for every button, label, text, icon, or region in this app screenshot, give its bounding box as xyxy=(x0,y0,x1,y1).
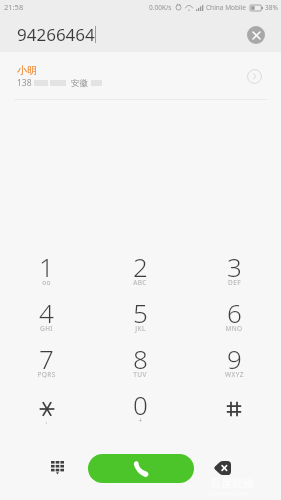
button[interactable]: 5 xyxy=(93,291,187,337)
staticText: 6 xyxy=(227,295,242,330)
staticText: oo xyxy=(42,278,51,287)
staticText: 0 xyxy=(133,387,148,422)
staticText: 138 xyxy=(17,77,32,89)
button[interactable] xyxy=(187,383,281,429)
staticText: MNO xyxy=(225,324,243,333)
button[interactable]: 2 xyxy=(93,245,187,291)
staticText: China Mobile xyxy=(206,3,247,12)
button[interactable]: 1 xyxy=(0,245,93,291)
staticText: 小明 xyxy=(17,64,37,77)
staticText: 1 xyxy=(39,249,54,284)
staticText: 0.00K/s xyxy=(149,3,172,12)
button[interactable]: 6 xyxy=(187,291,281,337)
button[interactable]: 4 xyxy=(0,291,93,337)
button[interactable]: Backspace xyxy=(206,452,238,484)
button[interactable]: 3 xyxy=(187,245,281,291)
staticText: GHI xyxy=(40,324,53,333)
staticText: 21:58 xyxy=(4,2,24,12)
button[interactable]: Call xyxy=(88,454,194,483)
staticText: TUV xyxy=(133,370,147,379)
staticText: + xyxy=(138,416,143,425)
staticText: 安徽 xyxy=(71,78,88,89)
button[interactable]: Dialpad xyxy=(42,452,74,484)
button[interactable]: 9 xyxy=(187,337,281,383)
staticText: 4 xyxy=(39,295,54,330)
button[interactable]: Clear xyxy=(247,26,265,44)
button[interactable]: 小明 xyxy=(0,52,281,99)
staticText: 8 xyxy=(133,341,148,376)
staticText: DEF xyxy=(228,278,241,287)
staticText: PQRS xyxy=(37,370,56,379)
button[interactable]: 7 xyxy=(0,337,93,383)
staticText: 3 xyxy=(227,249,242,284)
staticText: 94266464 xyxy=(17,23,95,46)
button[interactable]: Contact details xyxy=(246,68,262,84)
staticText: JKL xyxy=(135,324,146,333)
staticText: 2 xyxy=(133,249,148,284)
button[interactable]: , xyxy=(0,383,93,429)
staticText: 5 xyxy=(133,295,148,330)
staticText: ABC xyxy=(133,278,147,287)
staticText: , xyxy=(45,416,48,425)
button[interactable]: 0 xyxy=(93,383,187,429)
staticText: 38% xyxy=(265,3,278,12)
button[interactable]: 8 xyxy=(93,337,187,383)
staticText: WXYZ xyxy=(225,370,244,379)
staticText: 7 xyxy=(39,341,54,376)
staticText: 9 xyxy=(227,341,242,376)
